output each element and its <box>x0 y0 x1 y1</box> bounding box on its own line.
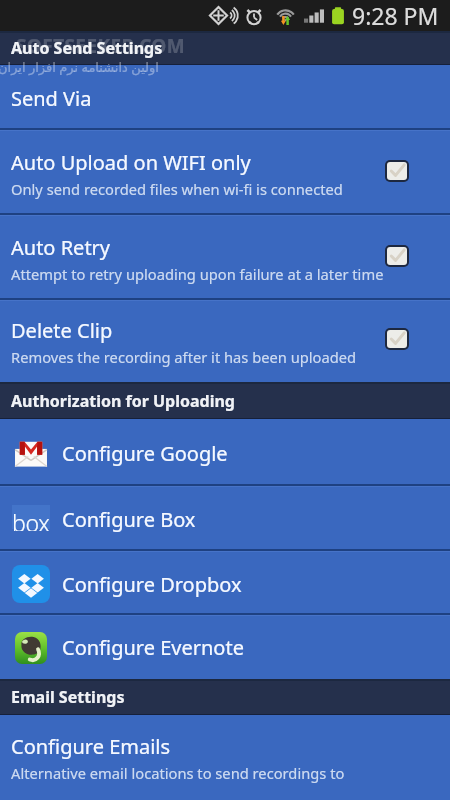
staticText: Configure Emails <box>11 733 171 760</box>
button[interactable]: box <box>0 487 450 552</box>
button[interactable]: Send Via <box>0 65 450 131</box>
staticText: 9:28 PM <box>352 0 439 31</box>
staticText: Delete Clip <box>11 317 113 344</box>
button[interactable]: Configure Evernote <box>0 616 450 679</box>
staticText: box <box>12 507 50 531</box>
button[interactable]: Configure Emails <box>0 715 450 800</box>
staticText: Configure Google <box>62 440 228 467</box>
staticText: Alternative email locations to send reco… <box>11 763 345 783</box>
staticText: Authorization for Uploading <box>11 390 235 412</box>
staticText: Auto Upload on WIFI only <box>11 149 251 176</box>
button[interactable]: Delete Clip <box>0 301 450 382</box>
staticText: Configure Evernote <box>62 634 244 661</box>
staticText: اولین دانشنامه نرم افزار ایران <box>0 58 159 76</box>
staticText: Send Via <box>11 85 92 112</box>
staticText: Auto Send Settings <box>11 37 163 59</box>
staticText: Removes the recording after it has been … <box>11 347 357 367</box>
staticText: Email Settings <box>11 686 125 708</box>
button[interactable]: Auto Retry <box>0 216 450 301</box>
staticText: Configure Dropbox <box>62 571 242 598</box>
staticText: SOFTSEEKER.COM <box>16 33 186 59</box>
staticText: Attempt to retry uploading upon failure … <box>11 264 384 284</box>
staticText: Auto Retry <box>11 234 111 261</box>
staticText: Only send recorded files when wi-fi is c… <box>11 179 343 199</box>
staticText: Configure Box <box>62 506 196 533</box>
button[interactable]: Configure Google <box>0 419 450 487</box>
button[interactable]: Configure Dropbox <box>0 552 450 616</box>
button[interactable]: Auto Upload on WIFI only <box>0 131 450 216</box>
